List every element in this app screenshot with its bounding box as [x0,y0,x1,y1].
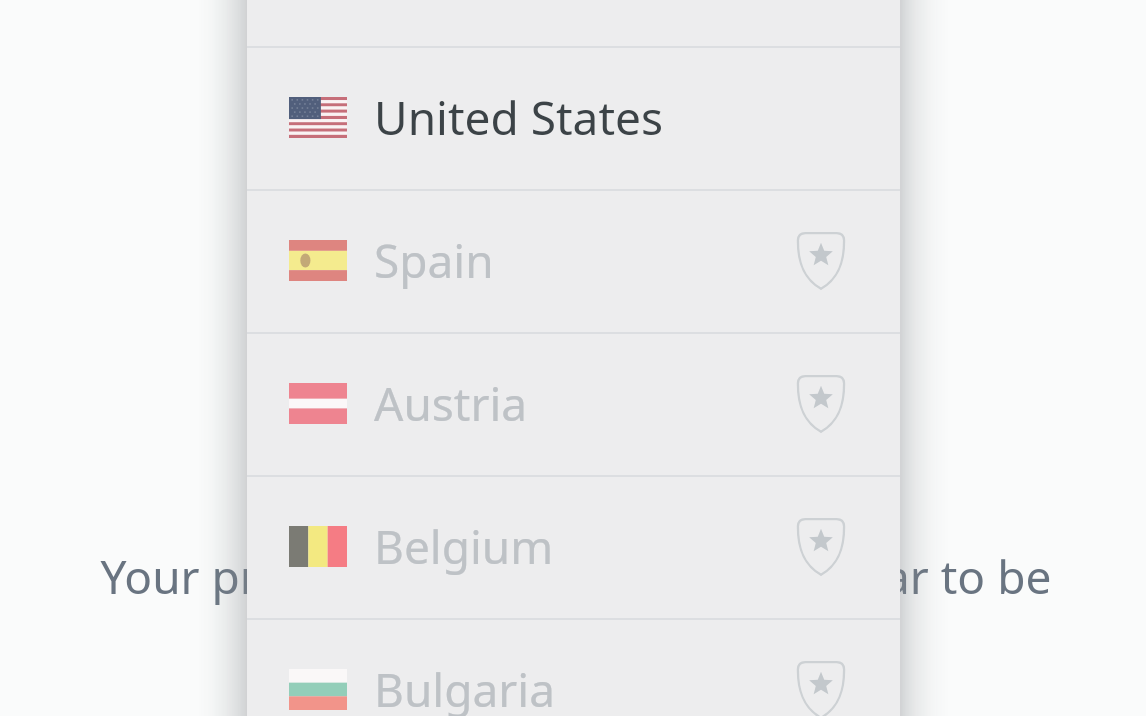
staticText: Austria [374,372,528,435]
staticText: Bulgaria [374,658,555,716]
button[interactable]: Premium only [797,661,845,716]
button[interactable]: Spain [247,189,900,332]
button[interactable]: Austria [247,332,900,475]
button[interactable]: Bulgaria [247,618,900,716]
button[interactable]: Premium only [797,375,845,433]
button[interactable]: Belgium [247,475,900,618]
button[interactable]: Premium only [797,518,845,576]
button[interactable]: Premium only [797,232,845,290]
staticText: Spain [374,229,494,292]
button[interactable]: United States [247,46,900,189]
staticText: Belgium [374,515,554,578]
staticText: Your preferences in this region appear t… [3,545,1146,608]
staticText: United States [374,86,663,149]
